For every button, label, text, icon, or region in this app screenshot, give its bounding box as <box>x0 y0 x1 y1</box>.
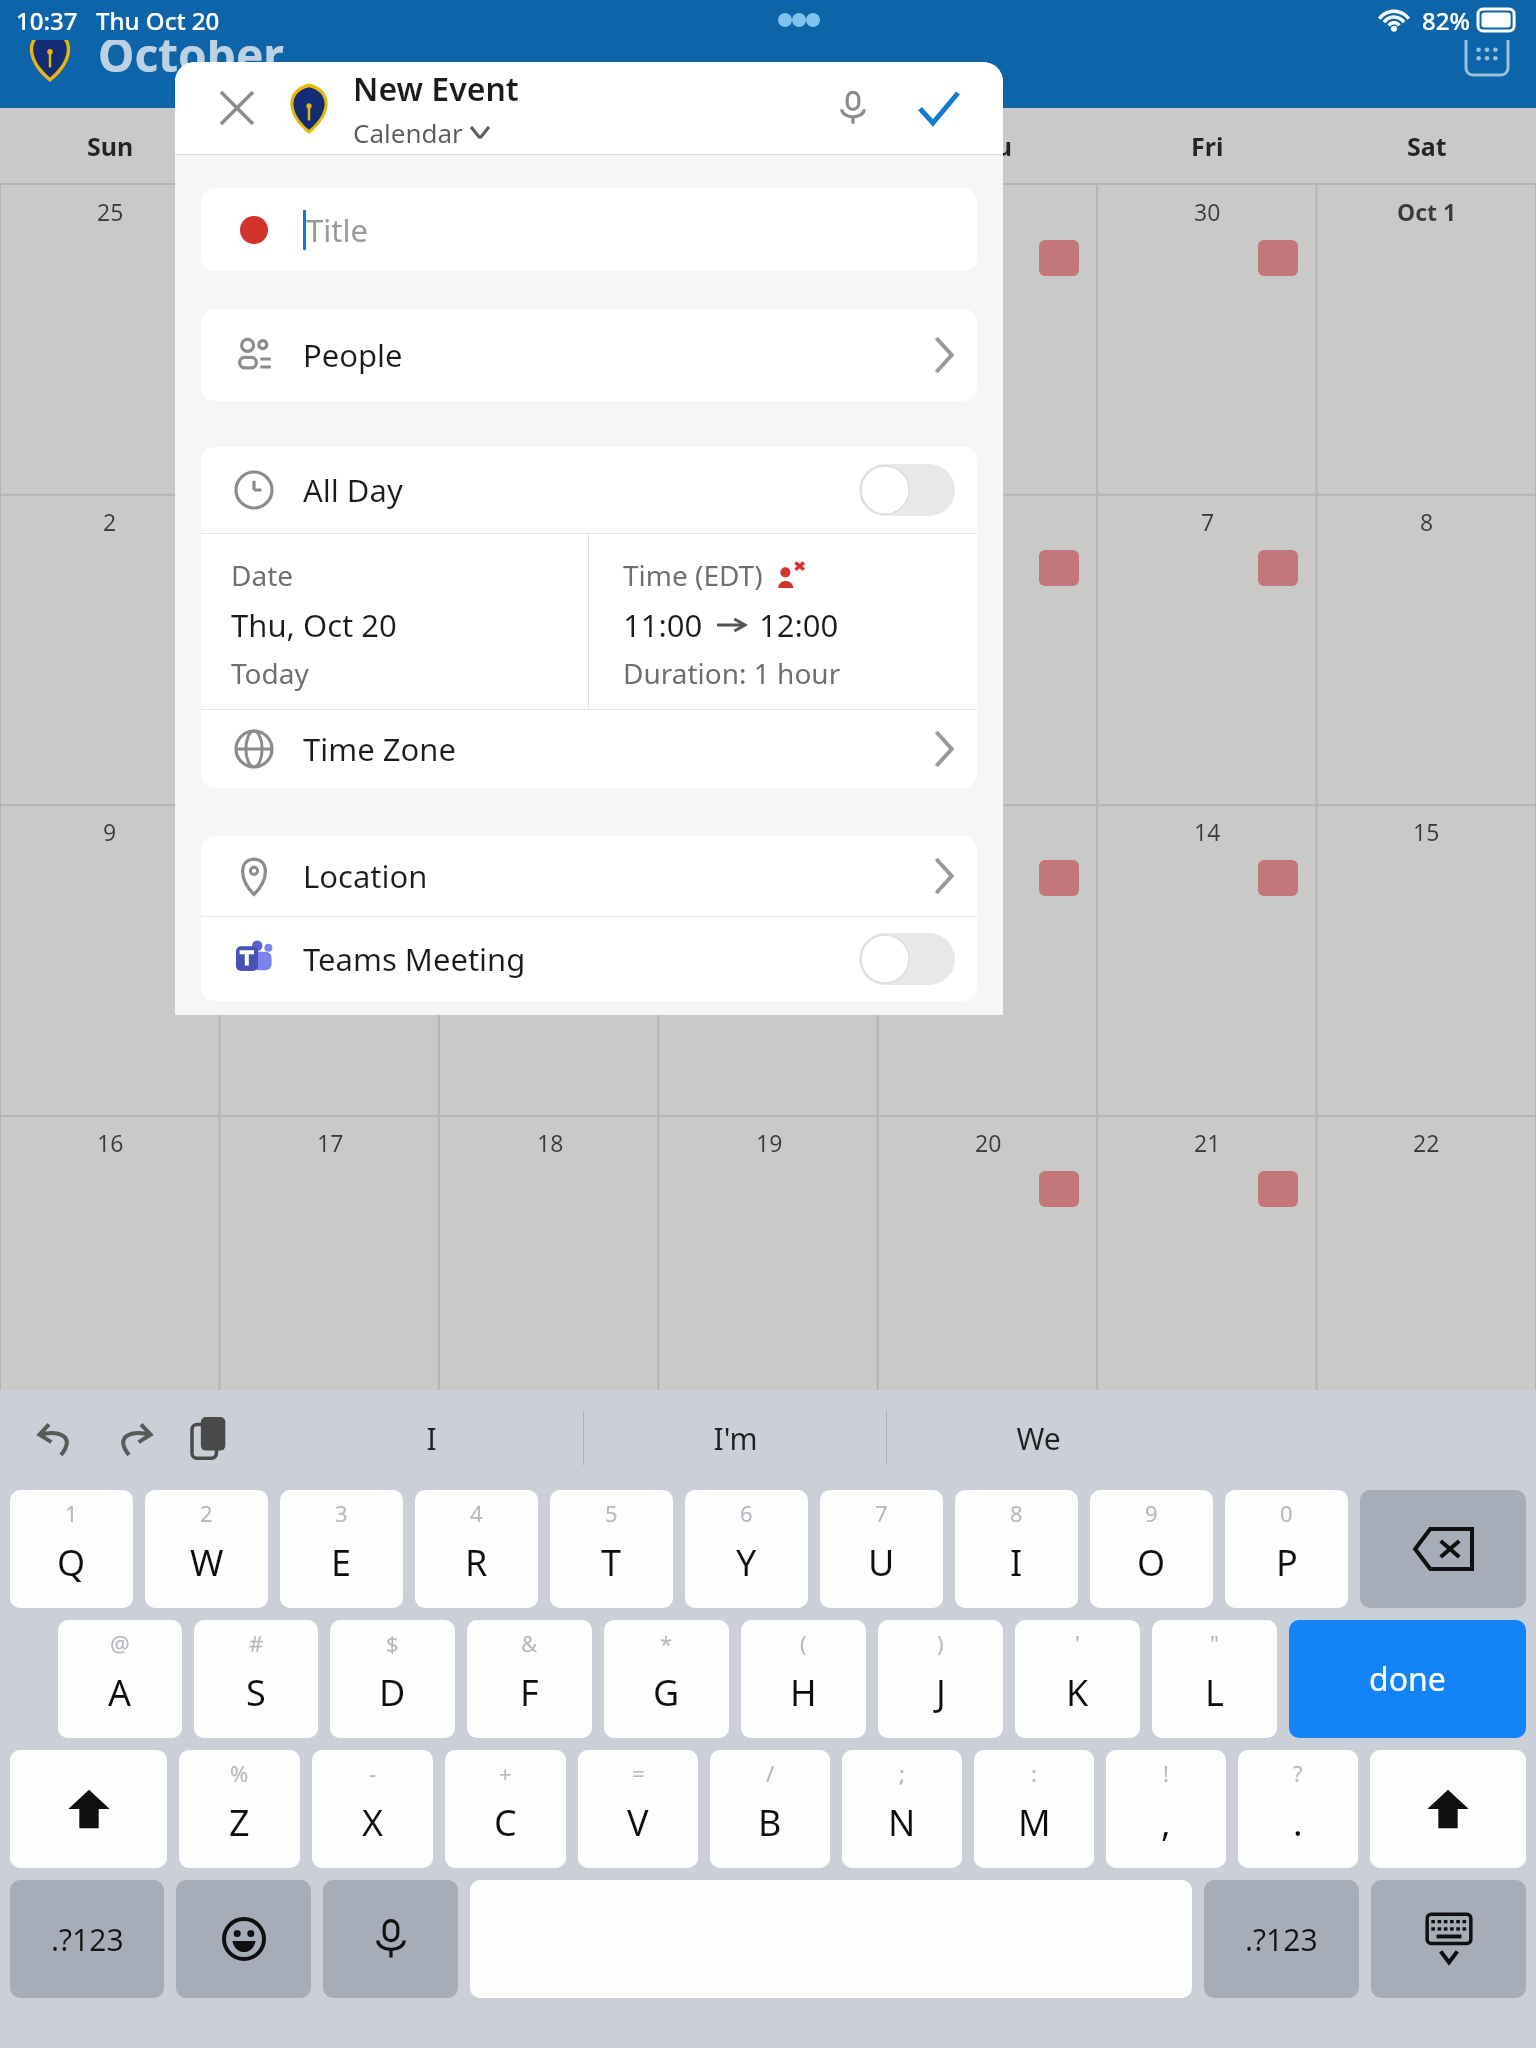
button[interactable]: ! <box>1106 1750 1226 1868</box>
staticText: 4 <box>543 506 557 537</box>
button[interactable]: Numbers <box>10 1880 164 1998</box>
staticText: P <box>1276 1538 1298 1587</box>
button[interactable]: Toggle <box>859 464 955 516</box>
button[interactable]: I'm <box>584 1390 886 1486</box>
staticText: I'm <box>713 1418 758 1459</box>
button[interactable]: Paste <box>178 1407 240 1469</box>
staticText: 5 <box>763 506 777 537</box>
staticText: 3 <box>982 1749 996 1780</box>
button[interactable]: : <box>974 1750 1094 1868</box>
staticText: N <box>888 1798 916 1847</box>
button[interactable]: ' <box>1015 1620 1140 1738</box>
button[interactable]: 4 <box>415 1490 538 1608</box>
button[interactable]: done <box>1289 1620 1526 1738</box>
button[interactable]: Time (EDT) <box>589 534 977 709</box>
staticText: Mon <box>302 129 358 163</box>
button[interactable]: ( <box>741 1620 866 1738</box>
staticText: Fri <box>1191 129 1224 163</box>
staticText: I <box>1010 1538 1023 1587</box>
button[interactable]: 6 <box>685 1490 808 1608</box>
staticText: & <box>521 1628 538 1658</box>
button[interactable]: Backspace <box>1360 1490 1526 1608</box>
button[interactable]: / <box>710 1750 830 1868</box>
button[interactable]: ? <box>1238 1750 1358 1868</box>
button[interactable]: 5 <box>550 1490 673 1608</box>
staticText: S <box>246 1668 266 1717</box>
button[interactable]: Toggle <box>859 933 955 985</box>
staticText: B <box>758 1798 782 1847</box>
button[interactable]: Dictate <box>823 78 883 138</box>
staticText: 2 <box>103 506 117 537</box>
button[interactable]: % <box>179 1750 300 1868</box>
button[interactable]: 7 <box>820 1490 943 1608</box>
staticText: 21 <box>1194 1127 1221 1158</box>
button[interactable]: Shift <box>10 1750 167 1868</box>
button[interactable]: Save <box>909 78 969 138</box>
button[interactable]: 1 <box>10 1490 133 1608</box>
staticText: " <box>1210 1628 1219 1658</box>
staticText: Today <box>231 654 309 692</box>
button[interactable]: Teams Meeting <box>201 917 977 1001</box>
button[interactable]: People <box>201 309 977 401</box>
staticText: done <box>1369 1657 1446 1701</box>
button[interactable]: Apps <box>1460 27 1514 81</box>
staticText: All Day <box>303 469 403 511</box>
staticText: ! <box>1163 1758 1169 1788</box>
button[interactable]: ) <box>878 1620 1003 1738</box>
staticText: 4 <box>1201 1749 1215 1780</box>
button[interactable]: 2 <box>145 1490 268 1608</box>
staticText: 8 <box>1010 1498 1023 1528</box>
button[interactable]: I <box>280 1390 583 1486</box>
button[interactable]: Voice input <box>323 1880 458 1998</box>
staticText: , <box>1161 1798 1171 1847</box>
staticText: = <box>632 1758 645 1788</box>
button[interactable]: Shift <box>1370 1750 1526 1868</box>
button[interactable]: Calendar <box>353 115 489 150</box>
button[interactable]: 3 <box>280 1490 403 1608</box>
staticText: 4 <box>470 1498 483 1528</box>
staticText: U <box>868 1538 895 1587</box>
button[interactable]: Numbers <box>1204 1880 1359 1998</box>
button[interactable]: Undo <box>26 1407 88 1469</box>
button[interactable]: ; <box>842 1750 962 1868</box>
button[interactable]: $ <box>330 1620 455 1738</box>
staticText: 8 <box>1420 506 1434 537</box>
button[interactable]: 9 <box>1090 1490 1213 1608</box>
staticText: 15 <box>1413 816 1440 847</box>
button[interactable]: Emoji <box>176 1880 311 1998</box>
button[interactable]: Location <box>201 836 977 916</box>
button[interactable]: Time Zone <box>201 710 977 788</box>
button[interactable]: Date <box>201 534 588 709</box>
staticText: K <box>1066 1668 1089 1717</box>
button[interactable]: Close <box>209 80 265 136</box>
button[interactable]: Redo <box>102 1407 164 1469</box>
button[interactable]: * <box>604 1620 729 1738</box>
button[interactable]: = <box>578 1750 698 1868</box>
button[interactable]: @ <box>58 1620 182 1738</box>
button[interactable]: - <box>312 1750 433 1868</box>
staticText: # <box>249 1628 264 1658</box>
button[interactable]: We <box>887 1390 1189 1486</box>
staticText: .?123 <box>1245 1919 1318 1960</box>
button[interactable]: + <box>445 1750 566 1868</box>
button[interactable]: All Day <box>201 447 977 533</box>
staticText: New Event <box>353 67 519 111</box>
staticText: F <box>520 1668 539 1717</box>
button[interactable]: Title <box>201 188 977 271</box>
staticText: 12 <box>756 816 783 847</box>
staticText: 3 <box>335 1498 348 1528</box>
button[interactable]: Hide keyboard <box>1371 1880 1526 1998</box>
button[interactable]: 0 <box>1225 1490 1348 1608</box>
staticText: 17 <box>317 1127 344 1158</box>
staticText: ; <box>899 1758 905 1788</box>
button[interactable]: 8 <box>955 1490 1078 1608</box>
staticText: . <box>1293 1798 1303 1847</box>
staticText: Oct 1 <box>1397 196 1457 227</box>
button[interactable]: " <box>1152 1620 1277 1738</box>
button[interactable]: # <box>194 1620 318 1738</box>
button[interactable]: & <box>467 1620 592 1738</box>
